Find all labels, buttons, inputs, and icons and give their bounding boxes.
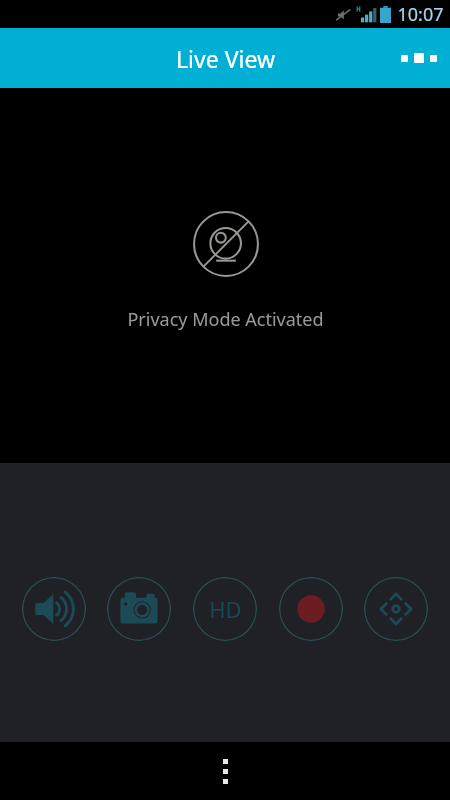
button[interactable]: More options [388, 28, 450, 88]
staticText: HD [209, 594, 242, 624]
button[interactable]: Speaker [22, 577, 86, 641]
staticText: Live View [176, 43, 275, 74]
button[interactable]: Menu [197, 742, 253, 800]
button[interactable]: HD quality [193, 577, 257, 641]
staticText: Privacy Mode Activated [127, 307, 324, 332]
button[interactable]: Record [279, 577, 343, 641]
staticText: 10:07 [397, 2, 444, 27]
button[interactable]: Pan and tilt [364, 577, 428, 641]
button[interactable]: Snapshot [107, 577, 171, 641]
